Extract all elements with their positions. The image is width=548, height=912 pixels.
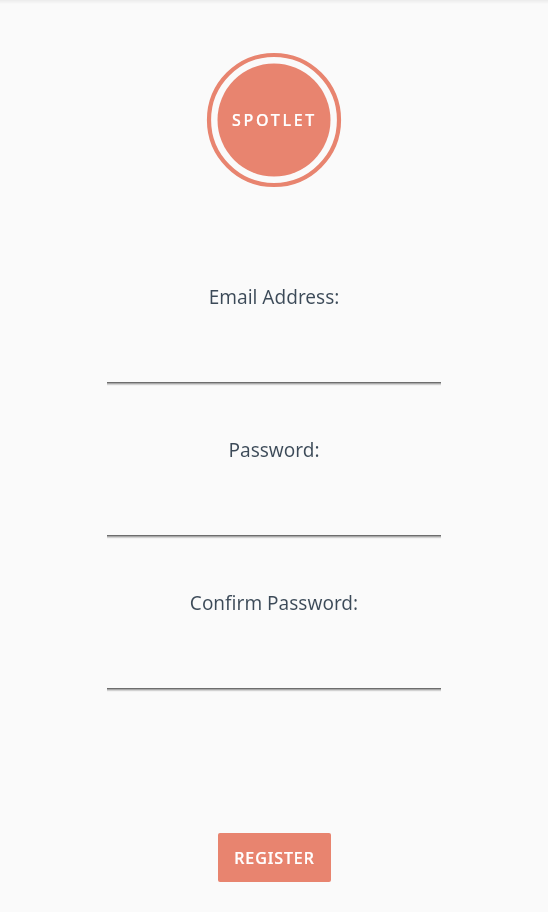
button[interactable]: Confirm Password input [107, 688, 441, 692]
button[interactable]: Password input [107, 535, 441, 539]
staticText: Confirm Password: [0, 590, 548, 616]
button[interactable]: REGISTER [218, 833, 331, 882]
staticText: REGISTER [234, 847, 315, 869]
staticText: SPOTLET [232, 109, 317, 131]
button[interactable]: Email Address input [107, 382, 441, 386]
staticText: Password: [0, 437, 548, 463]
staticText: Email Address: [0, 284, 548, 310]
